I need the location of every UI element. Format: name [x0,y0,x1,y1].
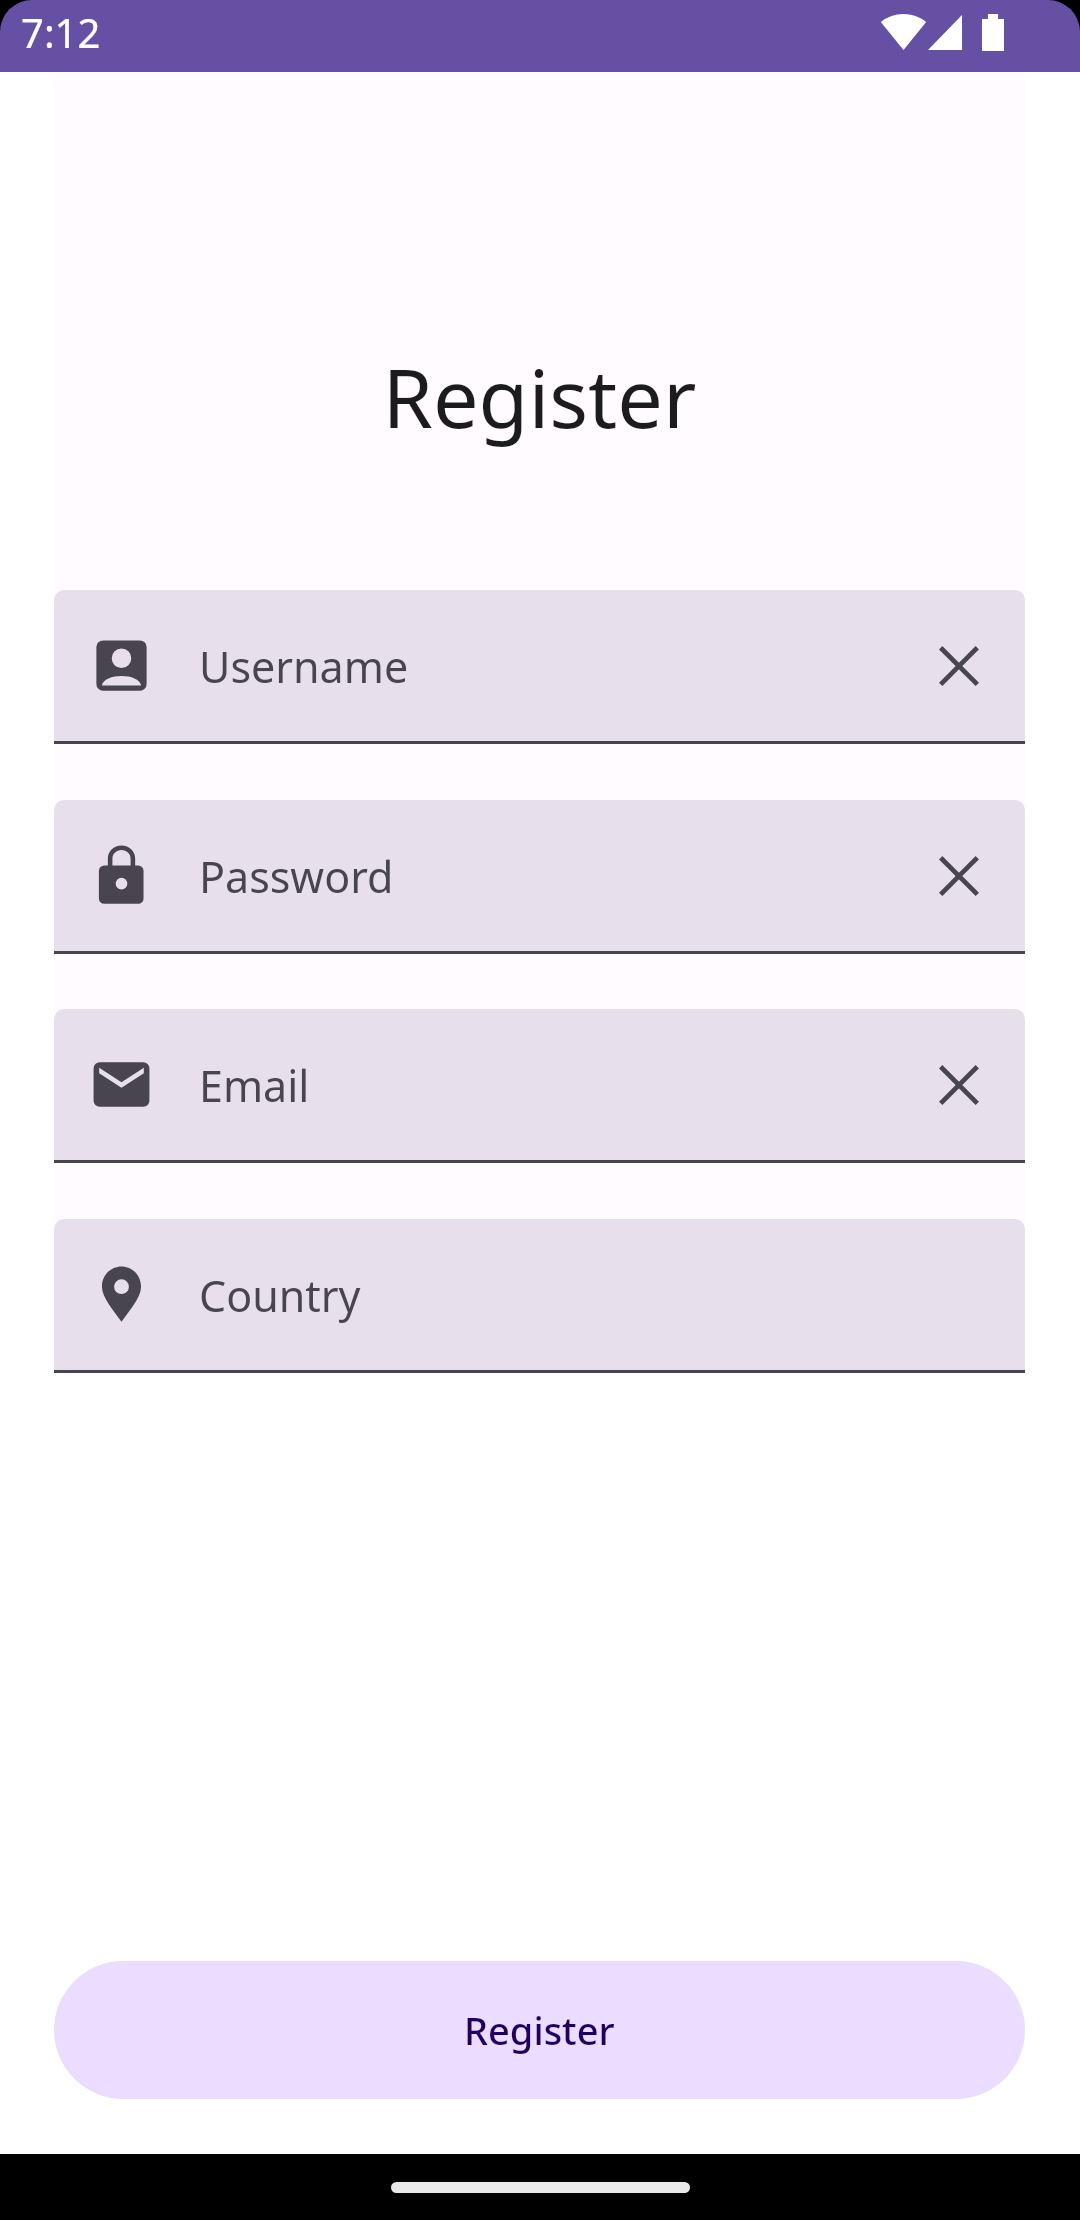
button[interactable]: Username [54,590,1025,741]
button[interactable]: Clear Email [916,1042,1002,1128]
button[interactable]: Country [54,1219,1025,1370]
staticText: 7:12 [21,5,101,59]
other: Wi-Fi [882,14,925,50]
button[interactable]: Clear Username [916,623,1002,709]
staticText: Country [199,1266,361,1325]
staticText: Email [199,1056,310,1115]
other: Cellular signal [928,15,962,50]
staticText: Register [464,2004,615,2056]
button[interactable]: Clear Password [916,833,1002,919]
staticText: Username [199,637,409,696]
button[interactable]: Password [54,800,1025,951]
staticText: Register [54,341,1025,451]
button[interactable]: Email [54,1009,1025,1160]
button[interactable]: Register [54,1961,1025,2099]
other: Battery [982,14,1004,51]
staticText: Password [199,847,394,906]
